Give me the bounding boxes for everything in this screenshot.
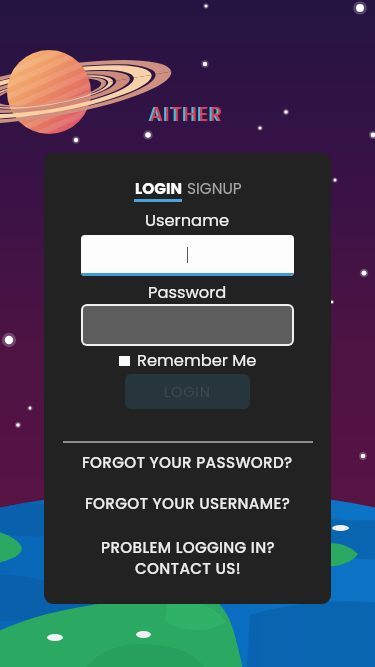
button[interactable] — [83, 306, 292, 344]
button[interactable]: LOGIN — [125, 374, 250, 409]
staticText: AITHER — [148, 101, 222, 128]
staticText: Remember Me — [137, 349, 257, 372]
button[interactable]: SIGNUP — [187, 178, 242, 199]
button[interactable]: FORGOT YOUR USERNAME? — [85, 493, 291, 514]
button[interactable]: FORGOT YOUR PASSWORD? — [82, 452, 293, 473]
staticText: LOGIN — [164, 382, 211, 402]
staticText: Username — [145, 209, 230, 232]
staticText: SIGNUP — [187, 178, 242, 199]
button[interactable]: PROBLEM LOGGING IN? CONTACT US! — [101, 537, 275, 580]
button[interactable]: Remember Me — [119, 349, 257, 372]
button[interactable]: LOGIN — [134, 178, 182, 202]
staticText: Password — [148, 281, 227, 304]
staticText: LOGIN — [135, 178, 182, 199]
button[interactable] — [81, 235, 294, 276]
staticText: AITHER — [150, 101, 224, 128]
